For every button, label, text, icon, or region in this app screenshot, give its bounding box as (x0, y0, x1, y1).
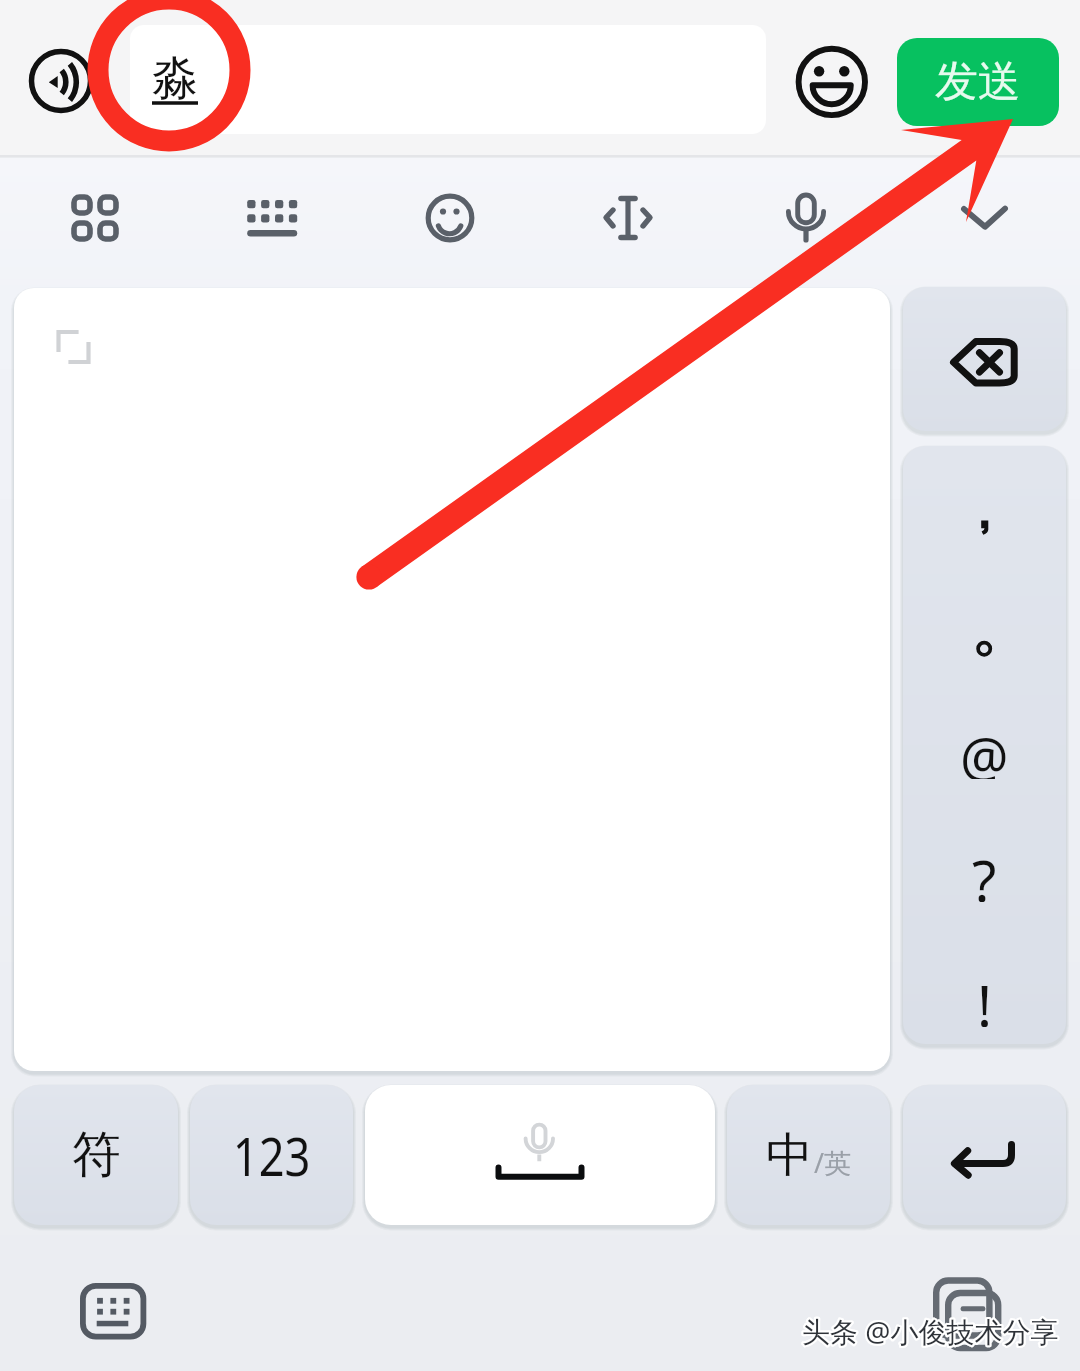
button[interactable]: Space (365, 1085, 715, 1225)
button[interactable]: Apps (51, 174, 139, 262)
button[interactable]: Hide keyboard (940, 174, 1028, 262)
staticText: @ (960, 719, 1009, 779)
staticText: ! (977, 967, 993, 1027)
button[interactable]: 淼 (130, 25, 766, 134)
button[interactable]: Keyboard layout (228, 174, 316, 262)
button[interactable]: 发送 (897, 38, 1059, 126)
button[interactable]: 123 (190, 1085, 353, 1225)
button[interactable]: Enter (903, 1085, 1066, 1225)
button[interactable]: Edit text (584, 174, 672, 262)
button[interactable]: Voice input (25, 45, 97, 117)
button[interactable] (903, 924, 1066, 1044)
button[interactable]: Switch keyboard (74, 1277, 152, 1345)
button[interactable]: Emoji (794, 43, 870, 119)
button[interactable] (903, 685, 1066, 805)
button[interactable]: 符 (14, 1085, 178, 1225)
staticText: 符 (72, 1124, 121, 1186)
staticText: 淼 (152, 50, 198, 108)
button[interactable]: Handwriting area (14, 288, 890, 1071)
button[interactable]: Voice (762, 174, 850, 262)
button[interactable]: Backspace (903, 287, 1066, 431)
button[interactable] (903, 805, 1066, 925)
staticText: 发送 (935, 55, 1021, 109)
button[interactable]: Emoticons (406, 174, 494, 262)
staticText: 头条 @小俊技术分享 (802, 1312, 1059, 1350)
staticText: 中 (766, 1126, 813, 1185)
staticText: ? (972, 842, 997, 902)
staticText: 123 (233, 1120, 311, 1191)
staticText: 头条 @小俊技术分享 (802, 1312, 1059, 1350)
button[interactable] (903, 566, 1066, 686)
button[interactable] (903, 446, 1066, 566)
button[interactable]: 中 (727, 1085, 890, 1225)
staticText: /英 (814, 1144, 852, 1181)
